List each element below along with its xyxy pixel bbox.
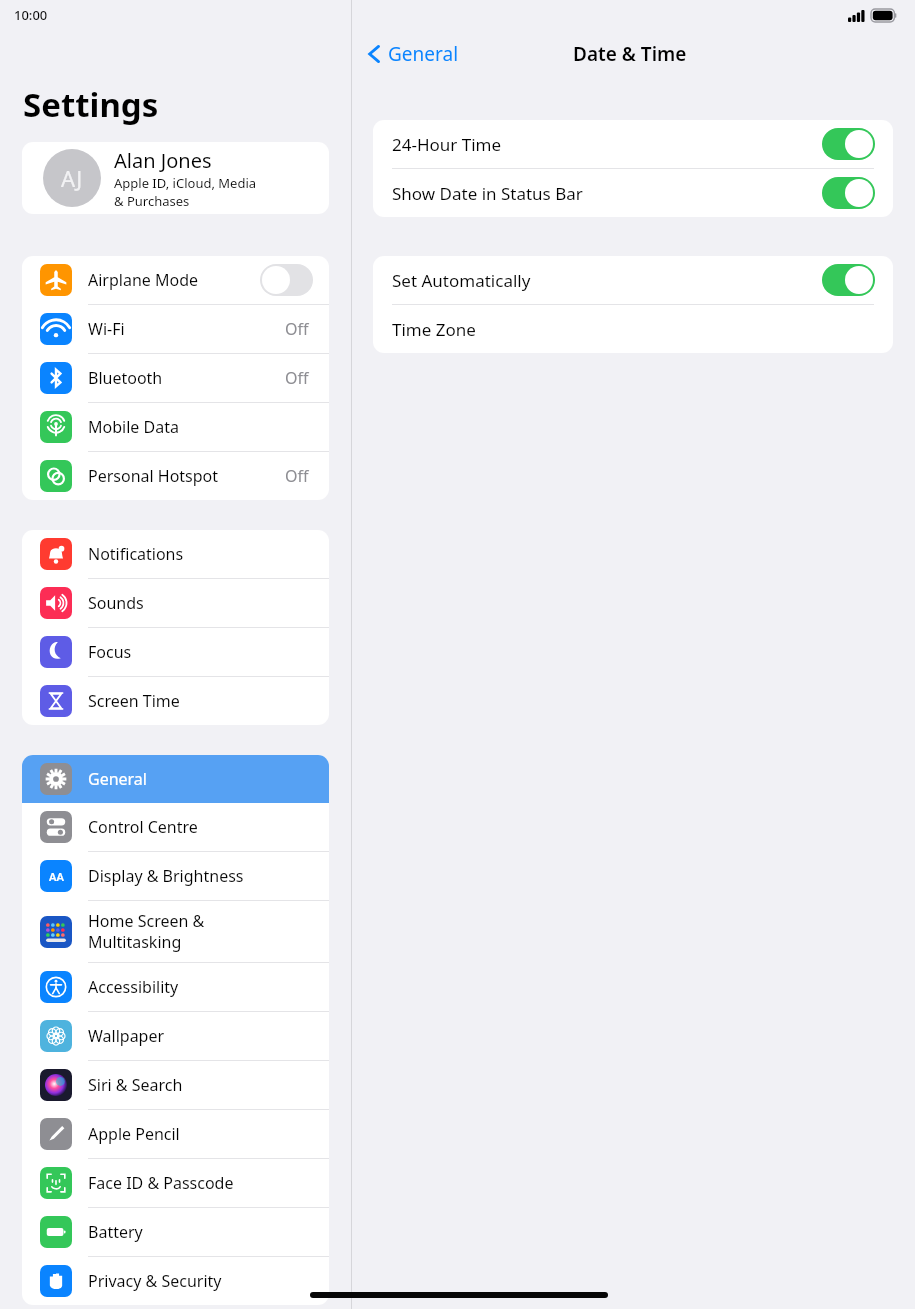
staticText: Screen Time (88, 690, 329, 712)
button[interactable]: Mobile Data (22, 403, 329, 451)
button[interactable]: On (822, 128, 875, 160)
button[interactable]: Set Automatically (373, 256, 893, 304)
staticText: Sounds (88, 592, 329, 614)
button[interactable]: Face ID & Passcode (22, 1159, 329, 1207)
button[interactable]: Airplane Mode (22, 256, 329, 304)
button[interactable]: On (822, 264, 875, 296)
staticText: Accessibility (88, 976, 329, 998)
staticText: Wi-Fi (88, 318, 285, 340)
button[interactable]: Accessibility (22, 963, 329, 1011)
staticText: Off (285, 318, 309, 340)
button[interactable]: Sounds (22, 579, 329, 627)
staticText: Airplane Mode (88, 269, 260, 291)
staticText: Home Screen & Multitasking (88, 910, 329, 953)
staticText: Apple Pencil (88, 1123, 329, 1145)
staticText: Off (285, 465, 309, 487)
button[interactable]: 24-Hour Time (373, 120, 893, 168)
button[interactable]: Home Screen & Multitasking (22, 901, 329, 962)
staticText: Control Centre (88, 816, 329, 838)
staticText: Wallpaper (88, 1025, 329, 1047)
staticText: Focus (88, 641, 329, 663)
button[interactable]: Control Centre (22, 803, 329, 851)
button[interactable]: Focus (22, 628, 329, 676)
staticText: Settings (23, 82, 159, 127)
staticText: Alan Jones (114, 147, 212, 174)
button[interactable]: AA (22, 852, 329, 900)
staticText: Show Date in Status Bar (392, 182, 822, 205)
button[interactable]: Wi-Fi (22, 305, 329, 353)
button[interactable]: Siri & Search (22, 1061, 329, 1109)
staticText: Date & Time (573, 41, 687, 67)
staticText: Face ID & Passcode (88, 1172, 329, 1194)
staticText: Notifications (88, 543, 329, 565)
staticText: Set Automatically (392, 269, 822, 292)
button[interactable]: Off (260, 264, 313, 296)
staticText: AA (49, 869, 64, 884)
button[interactable]: Personal Hotspot (22, 452, 329, 500)
staticText: AJ (61, 163, 83, 193)
button[interactable]: Screen Time (22, 677, 329, 725)
staticText: 24-Hour Time (392, 133, 822, 156)
button[interactable]: AJ (22, 142, 329, 214)
staticText: Time Zone (392, 318, 893, 341)
button[interactable]: Bluetooth (22, 354, 329, 402)
staticText: & Purchases (114, 192, 190, 210)
staticText: General (388, 41, 459, 67)
staticText: Bluetooth (88, 367, 285, 389)
staticText: Personal Hotspot (88, 465, 285, 487)
button[interactable]: General (364, 37, 463, 71)
staticText: General (88, 768, 329, 790)
button[interactable]: Privacy & Security (22, 1257, 329, 1305)
staticText: Battery (88, 1221, 329, 1243)
staticText: Apple ID, iCloud, Media (114, 174, 257, 192)
button[interactable]: Notifications (22, 530, 329, 578)
button[interactable]: Time Zone (373, 305, 893, 353)
button[interactable]: Wallpaper (22, 1012, 329, 1060)
staticText: Off (285, 367, 309, 389)
staticText: Display & Brightness (88, 865, 329, 887)
staticText: 10:00 (14, 6, 48, 24)
staticText: Privacy & Security (88, 1270, 329, 1292)
staticText: Mobile Data (88, 416, 329, 438)
button[interactable]: Apple Pencil (22, 1110, 329, 1158)
button[interactable]: On (822, 177, 875, 209)
staticText: Siri & Search (88, 1074, 329, 1096)
button[interactable]: General (22, 755, 329, 803)
button[interactable]: Battery (22, 1208, 329, 1256)
button[interactable]: Show Date in Status Bar (373, 169, 893, 217)
